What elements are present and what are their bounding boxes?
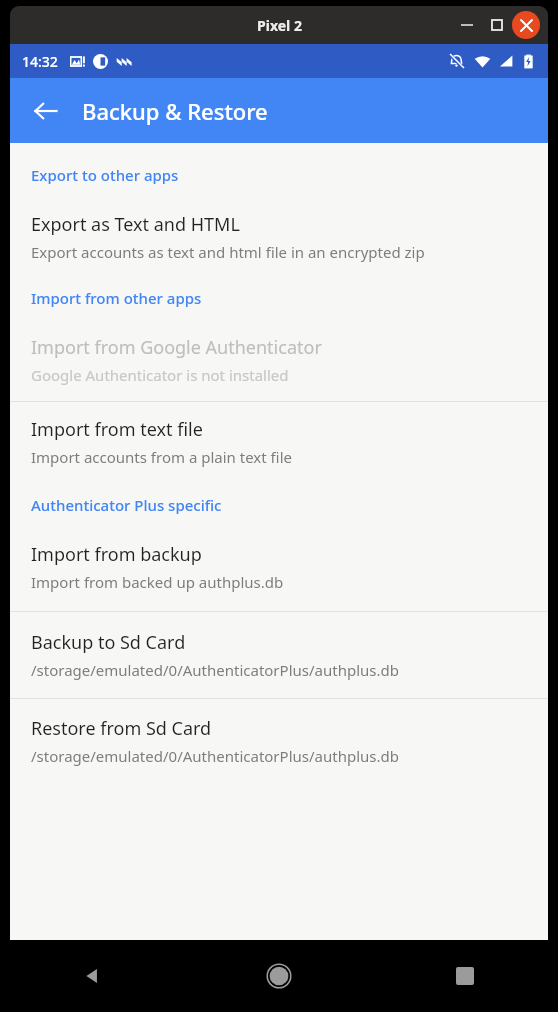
- staticText: Import from other apps: [31, 288, 202, 308]
- button[interactable]: Restore from Sd Card: [10, 715, 548, 768]
- button[interactable]: Close: [512, 11, 540, 39]
- staticText: /storage/emulated/0/AuthenticatorPlus/au…: [31, 660, 399, 680]
- staticText: Google Authenticator is not installed: [31, 365, 289, 385]
- button[interactable]: Maximize: [482, 10, 512, 40]
- button[interactable]: Home: [186, 940, 372, 1012]
- button[interactable]: Recent apps: [372, 940, 558, 1012]
- button[interactable]: Back: [22, 87, 70, 135]
- button: Import from Google Authenticator: [10, 334, 548, 387]
- staticText: Pixel 2: [257, 16, 302, 35]
- staticText: Backup to Sd Card: [31, 630, 186, 655]
- button[interactable]: Back: [0, 940, 186, 1012]
- button[interactable]: Import from text file: [10, 416, 548, 469]
- staticText: Export accounts as text and html file in…: [31, 242, 425, 262]
- staticText: Export to other apps: [31, 165, 179, 185]
- staticText: Import accounts from a plain text file: [31, 447, 292, 467]
- button[interactable]: Backup to Sd Card: [10, 629, 548, 682]
- staticText: Import from backup: [31, 542, 202, 567]
- staticText: Backup & Restore: [82, 96, 268, 126]
- button[interactable]: Minimize: [452, 10, 482, 40]
- staticText: Import from backed up authplus.db: [31, 572, 284, 592]
- staticText: 14:32: [22, 52, 58, 71]
- staticText: Import from Google Authenticator: [31, 335, 322, 360]
- button[interactable]: Export as Text and HTML: [10, 211, 548, 264]
- staticText: Import from text file: [31, 417, 203, 442]
- staticText: Authenticator Plus specific: [31, 495, 222, 515]
- staticText: /storage/emulated/0/AuthenticatorPlus/au…: [31, 746, 399, 766]
- staticText: Export as Text and HTML: [31, 212, 240, 237]
- button[interactable]: Import from backup: [10, 541, 548, 594]
- staticText: Restore from Sd Card: [31, 716, 212, 741]
